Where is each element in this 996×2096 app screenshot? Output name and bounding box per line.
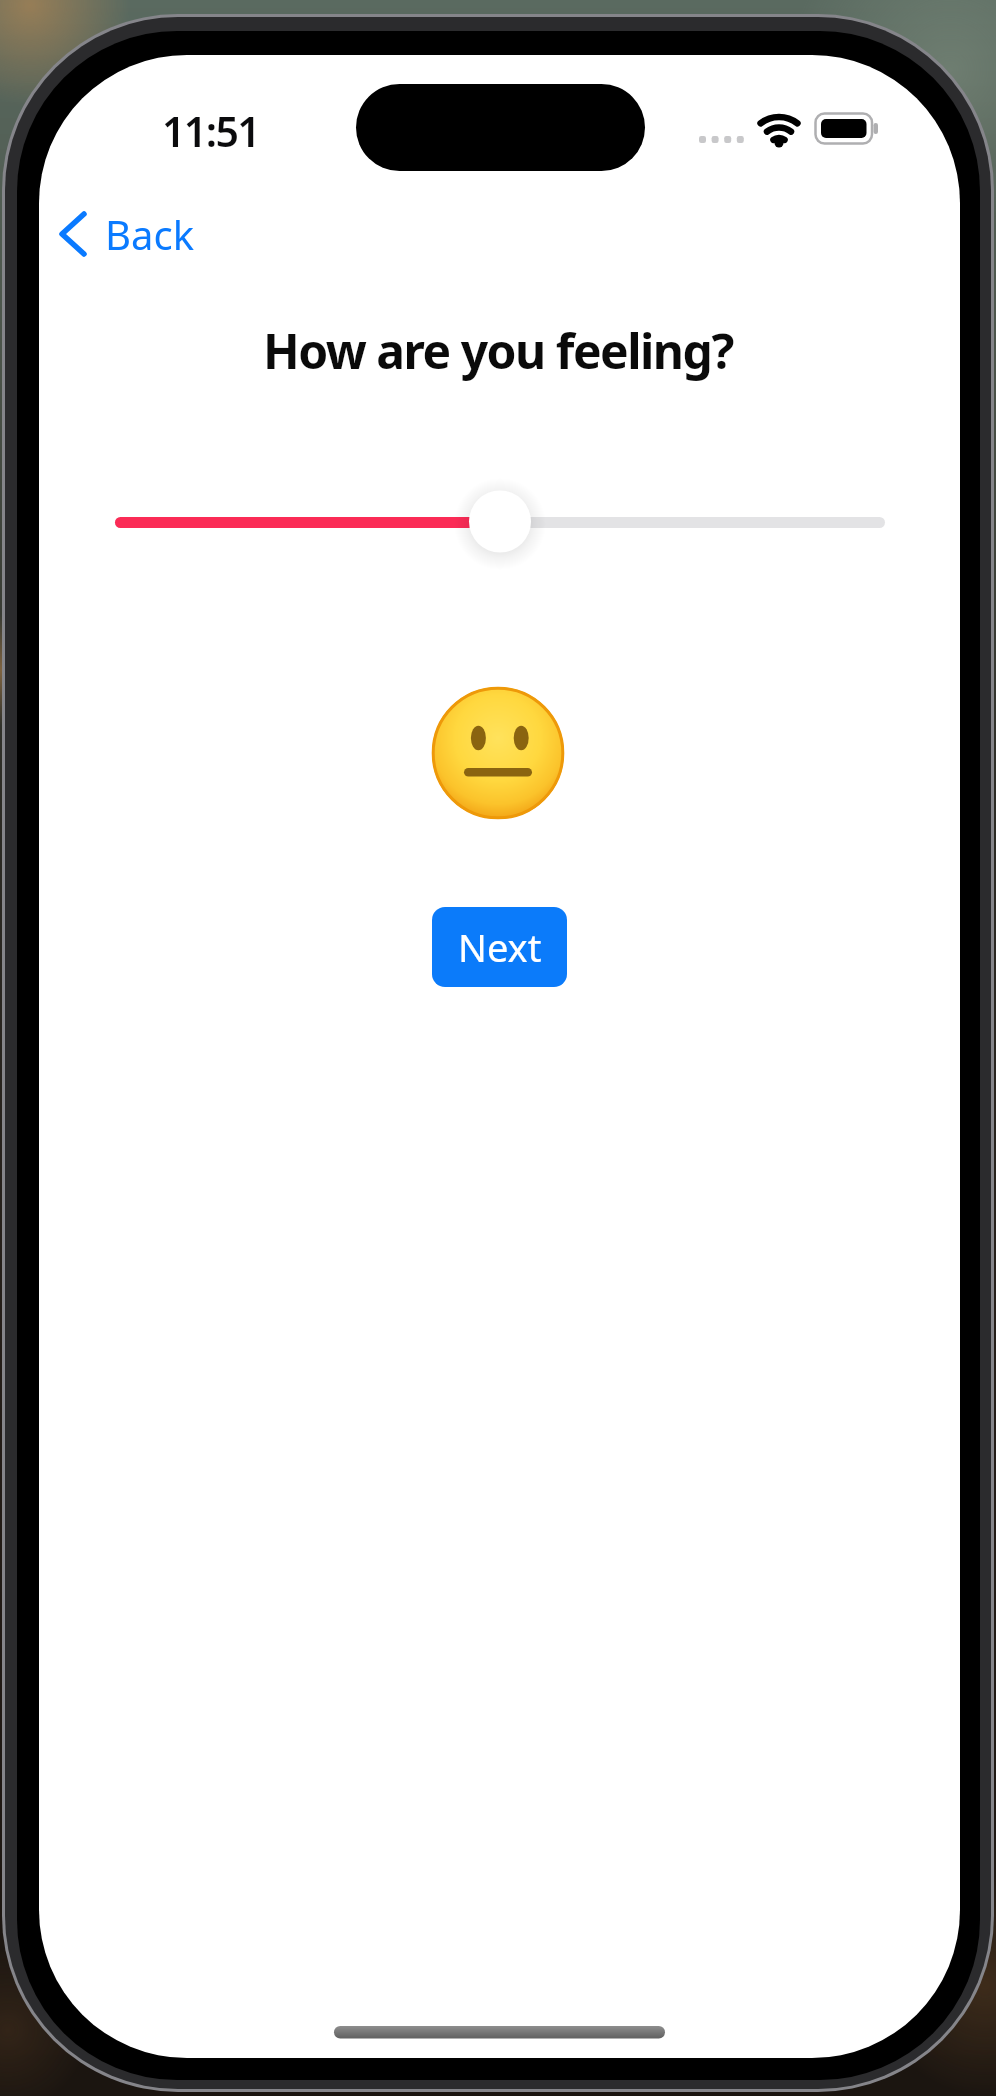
button[interactable]: Back (52, 203, 194, 265)
staticText: How are you feeling? (263, 318, 733, 383)
button[interactable]: Next (432, 907, 567, 987)
staticText: Back (105, 207, 194, 261)
staticText: Next (458, 921, 542, 973)
button[interactable] (469, 490, 531, 552)
staticText: 11:51 (162, 103, 260, 159)
